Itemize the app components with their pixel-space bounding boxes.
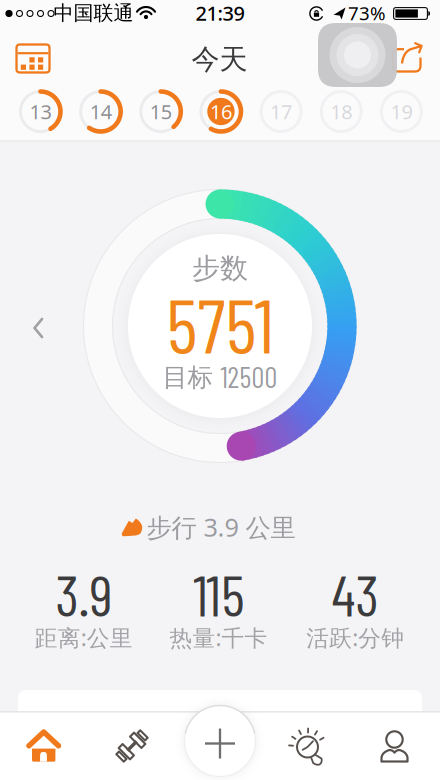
- staticText: 19: [390, 98, 412, 125]
- staticText: 目标 12500: [162, 360, 277, 393]
- staticText: 13: [29, 98, 51, 125]
- staticText: 活跃:分钟: [306, 622, 404, 652]
- button[interactable]: 19: [373, 85, 429, 138]
- staticText: 115: [193, 559, 244, 628]
- staticText: 18: [330, 98, 352, 125]
- button[interactable]: [16, 306, 60, 350]
- button[interactable]: [352, 712, 440, 780]
- staticText: 16: [210, 98, 232, 125]
- staticText: 5751: [166, 277, 273, 369]
- button[interactable]: 15: [133, 85, 189, 138]
- staticText: 距离:公里: [35, 622, 133, 652]
- button[interactable]: 18: [313, 85, 369, 138]
- button[interactable]: [88, 712, 176, 780]
- staticText: 14: [90, 98, 112, 125]
- button[interactable]: [0, 712, 88, 780]
- button[interactable]: [318, 23, 397, 87]
- staticText: 3.9: [55, 559, 112, 628]
- staticText: 中国联通: [53, 1, 133, 25]
- staticText: 21:39: [195, 0, 244, 26]
- button[interactable]: 13: [12, 85, 68, 138]
- button[interactable]: [182, 703, 258, 779]
- button[interactable]: 16: [193, 85, 249, 138]
- staticText: 73%: [348, 1, 386, 25]
- staticText: 步行 3.9 公里: [146, 510, 295, 544]
- staticText: 热量:千卡: [169, 622, 267, 652]
- staticText: 15: [150, 98, 172, 125]
- button[interactable]: 14: [73, 85, 129, 138]
- button[interactable]: 17: [253, 85, 309, 138]
- staticText: 步数: [192, 251, 248, 286]
- staticText: 17: [270, 98, 292, 125]
- button[interactable]: [11, 36, 55, 80]
- button[interactable]: [264, 712, 352, 780]
- button[interactable]: [385, 35, 429, 79]
- staticText: 43: [331, 559, 378, 628]
- staticText: 今天: [191, 42, 247, 77]
